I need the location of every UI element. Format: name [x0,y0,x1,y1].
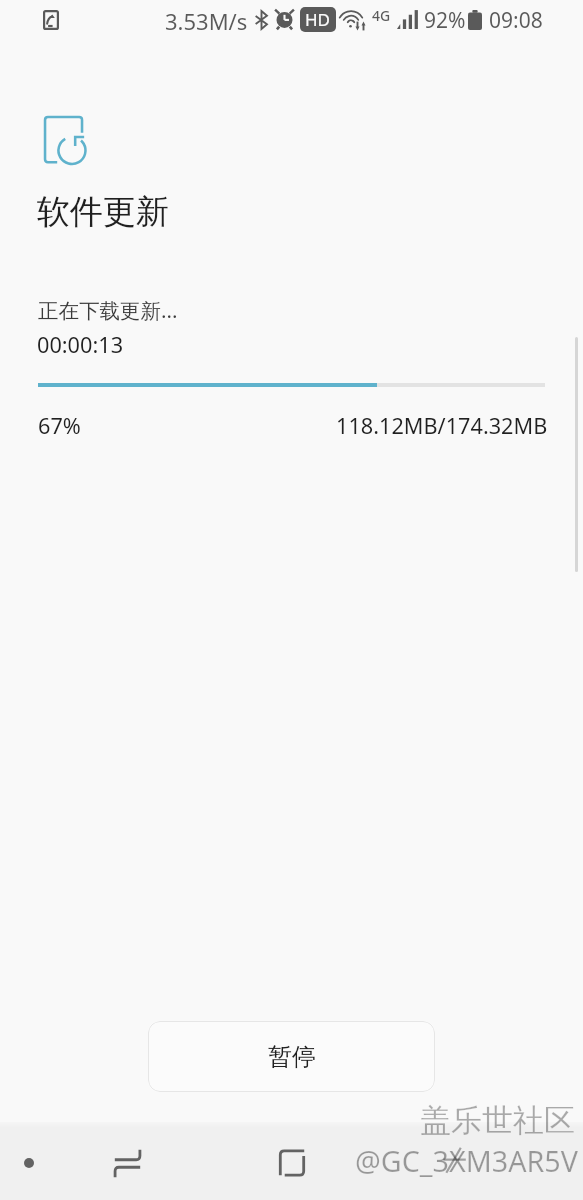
staticText: HD [305,8,331,31]
staticText: @GC_3XM3AR5V [355,1141,578,1180]
staticText: 118.12MB/174.32MB [336,411,548,441]
button[interactable]: Back [407,1126,504,1200]
staticText: 67% [38,411,81,441]
button[interactable]: 暂停 [148,1021,435,1092]
staticText: 盖乐世社区 [420,1101,575,1140]
staticText: 软件更新 [37,191,169,233]
staticText: 4G [372,6,391,25]
button[interactable]: Home [243,1126,340,1200]
staticText: 暂停 [268,1042,316,1072]
staticText: 正在下载更新... [38,296,178,324]
staticText: 3.53M/s [165,6,248,36]
staticText: 00:00:13 [37,330,124,360]
button[interactable]: Recent apps [79,1126,176,1200]
button[interactable]: More options [0,1126,58,1200]
staticText: 09:08 [489,6,543,35]
staticText: 92% [424,6,466,35]
